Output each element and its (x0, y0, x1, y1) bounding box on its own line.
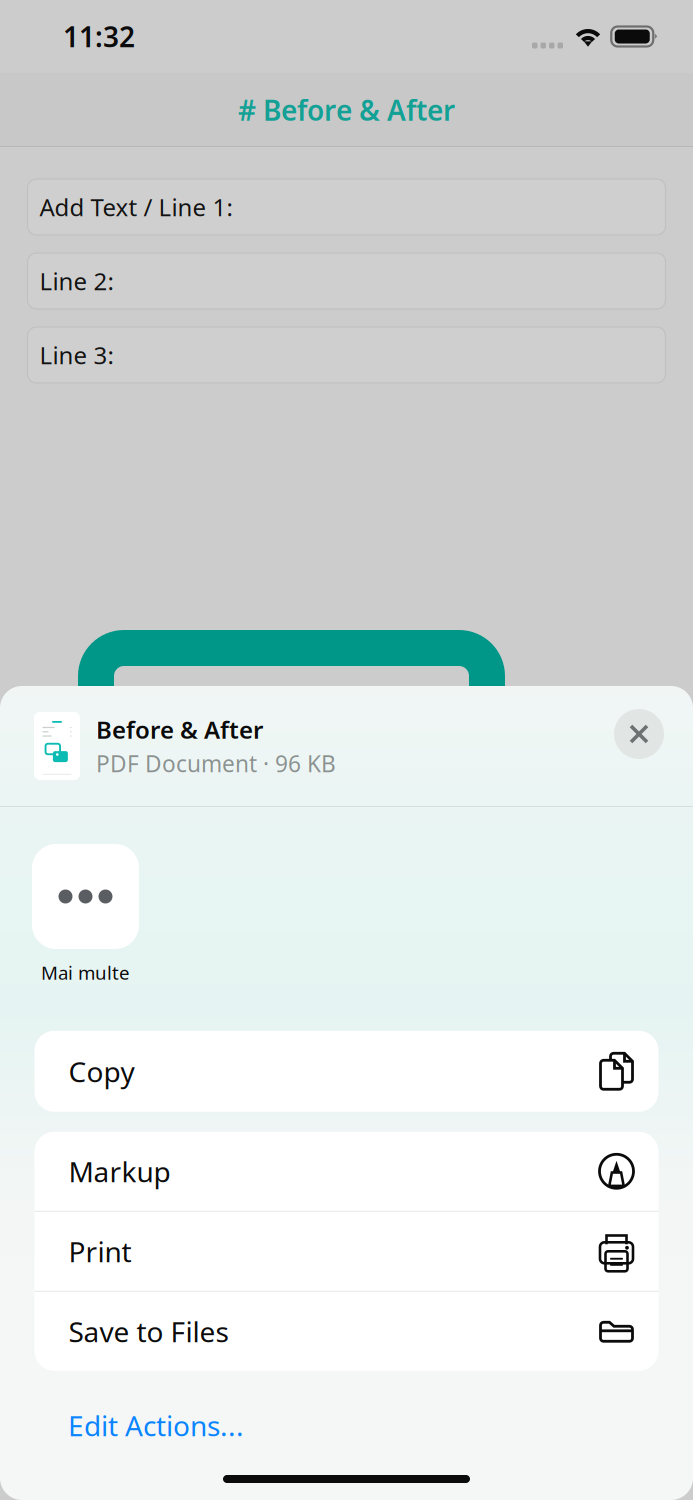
staticText: Markup (68, 1153, 170, 1190)
staticText: Edit Actions... (68, 1407, 244, 1444)
staticText: PDF Document · 96 KB (96, 748, 336, 778)
button[interactable]: Edit Actions... (68, 1399, 244, 1452)
button[interactable]: Print (34, 1212, 658, 1291)
staticText: Line 2: (39, 265, 113, 297)
staticText: Add Text / Line 1: (39, 191, 232, 223)
staticText: Line 3: (39, 339, 113, 371)
button[interactable]: Markup (34, 1132, 658, 1211)
button[interactable]: Save to Files (34, 1292, 658, 1371)
button[interactable]: Mai multe (32, 844, 139, 985)
staticText: Print (68, 1233, 131, 1270)
button[interactable]: Close (607, 702, 671, 766)
staticText: Save to Files (68, 1313, 228, 1350)
button[interactable]: Copy (34, 1031, 658, 1112)
staticText: Mai multe (41, 960, 130, 985)
staticText: Before & After (96, 713, 263, 745)
staticText: 11:32 (63, 18, 135, 55)
staticText: Copy (68, 1053, 134, 1090)
staticText: # Before & After (238, 91, 455, 129)
